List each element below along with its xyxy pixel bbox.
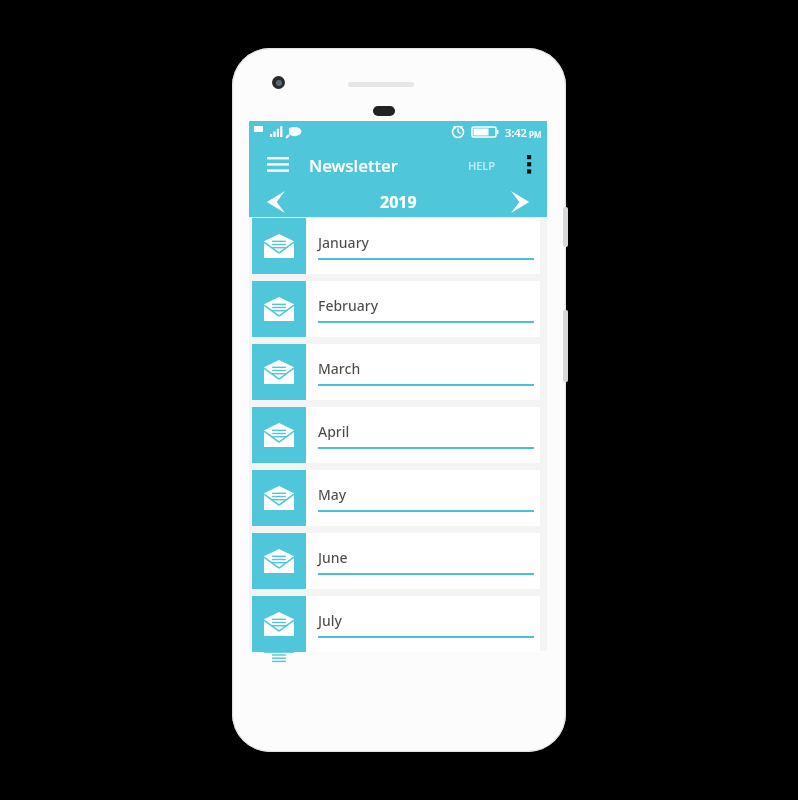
staticText: July [318, 611, 343, 630]
button[interactable]: January [252, 218, 540, 274]
staticText: February [318, 296, 379, 315]
staticText: HELP [468, 158, 495, 173]
staticText: March [318, 359, 361, 378]
button[interactable]: February [252, 281, 540, 337]
button[interactable]: More options [511, 143, 547, 187]
staticText: May [318, 485, 347, 504]
button[interactable]: HELP [468, 143, 495, 187]
button[interactable]: March [252, 344, 540, 400]
staticText: 2019 [380, 191, 417, 213]
button[interactable]: July [252, 596, 540, 652]
staticText: January [318, 233, 369, 252]
button[interactable]: Next year [501, 187, 547, 217]
staticText: 3:42 [505, 125, 527, 140]
button[interactable]: May [252, 470, 540, 526]
button[interactable]: June [252, 533, 540, 589]
staticText: June [318, 548, 348, 567]
button[interactable]: Menu [257, 143, 299, 187]
button[interactable]: Previous year [249, 187, 295, 217]
staticText: Newsletter [309, 154, 398, 177]
staticText: PM [529, 129, 542, 140]
button[interactable]: April [252, 407, 540, 463]
staticText: April [318, 422, 350, 441]
